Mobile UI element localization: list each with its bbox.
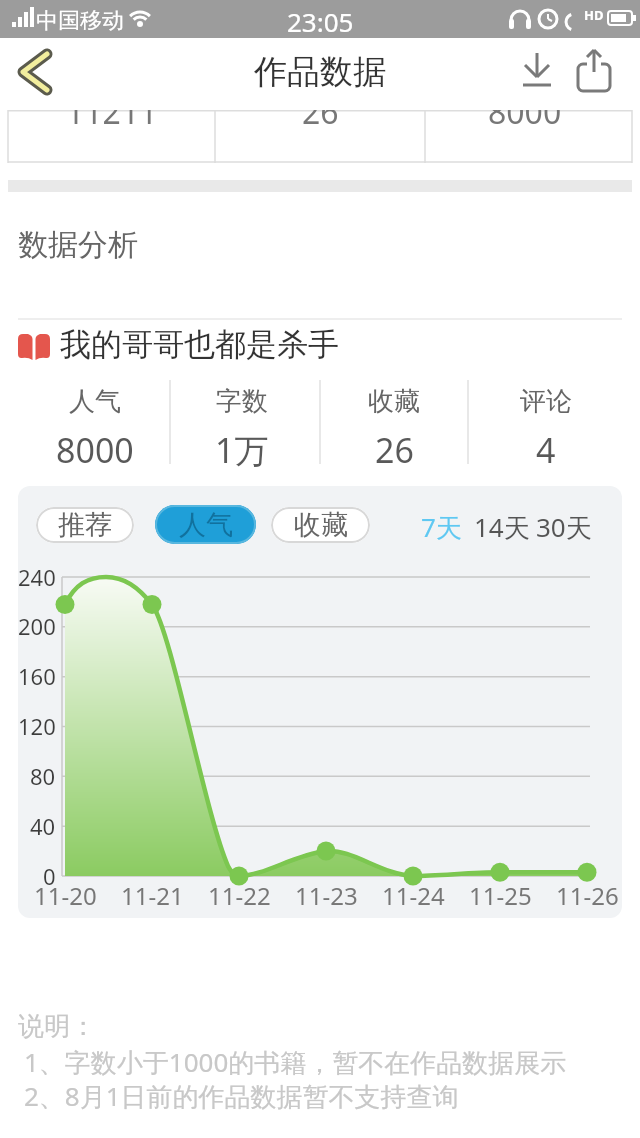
staticText: 11211 <box>66 110 158 132</box>
button[interactable]: 30天 <box>534 509 594 543</box>
staticText: 8000 <box>488 110 562 132</box>
staticText: 收藏 <box>294 508 348 542</box>
staticText: 11-24 <box>382 879 445 909</box>
staticText: 8000 <box>56 427 134 471</box>
button[interactable]: 14天 <box>472 509 532 543</box>
staticText: 评论 <box>520 385 572 417</box>
staticText: 240 <box>18 562 56 592</box>
staticText: 26 <box>375 427 414 471</box>
button[interactable]: 人气 <box>155 505 256 544</box>
staticText: 30天 <box>536 509 592 543</box>
staticText: 我的哥哥也都是杀手 <box>60 325 339 364</box>
button[interactable] <box>566 44 622 100</box>
button[interactable]: 收藏 <box>271 507 370 543</box>
staticText: 14天 <box>474 509 530 543</box>
staticText: 11-23 <box>295 879 358 909</box>
staticText: 作品数据 <box>254 51 386 93</box>
staticText: 1万 <box>215 427 269 471</box>
staticText: 字数 <box>216 385 268 417</box>
staticText: 2、8月1日前的作品数据暂不支持查询 <box>24 1078 459 1114</box>
staticText: 200 <box>18 611 56 641</box>
staticText: 4 <box>536 427 556 471</box>
button[interactable] <box>510 44 564 100</box>
staticText: 120 <box>18 711 56 741</box>
staticText: 11-25 <box>469 879 532 909</box>
staticText: 人气 <box>179 508 233 542</box>
button[interactable]: 7天 <box>412 509 470 543</box>
staticText: 23:05 <box>287 4 354 34</box>
staticText: 11-20 <box>34 879 97 909</box>
staticText: 中国移动 <box>36 7 124 35</box>
staticText: 人气 <box>69 385 121 417</box>
staticText: 收藏 <box>368 385 420 417</box>
staticText: 7天 <box>421 509 462 543</box>
staticText: 40 <box>30 811 56 841</box>
staticText: 0 <box>43 861 56 891</box>
staticText: 80 <box>30 761 56 791</box>
staticText: 数据分析 <box>18 226 138 264</box>
staticText: 11-22 <box>208 879 271 909</box>
staticText: HD <box>584 6 604 24</box>
staticText: 推荐 <box>58 508 112 542</box>
staticText: 说明： <box>18 1010 96 1043</box>
staticText: 26 <box>302 110 339 132</box>
staticText: 11-21 <box>121 879 184 909</box>
button[interactable]: 推荐 <box>36 507 134 543</box>
staticText: 11-26 <box>556 879 619 909</box>
staticText: 1、字数小于1000的书籍，暂不在作品数据展示 <box>24 1044 567 1080</box>
staticText: 160 <box>18 661 56 691</box>
button[interactable] <box>8 44 64 100</box>
